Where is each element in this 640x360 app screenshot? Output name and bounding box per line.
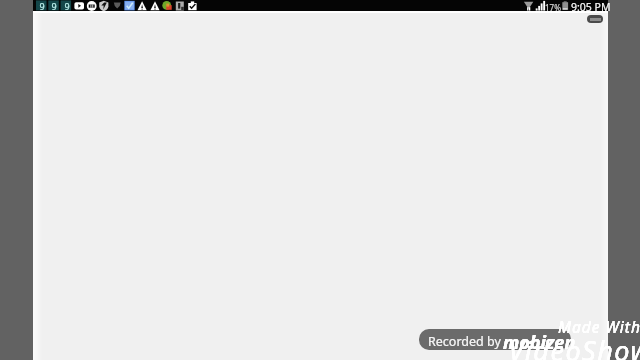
staticText: 9 xyxy=(64,0,70,10)
staticText: 9:05 PM xyxy=(571,0,611,13)
button[interactable]: Overlay badge xyxy=(587,15,603,23)
staticText: Recorded by xyxy=(428,333,501,350)
staticText: 9 xyxy=(39,0,45,10)
button[interactable]: Recorded by xyxy=(419,329,571,350)
staticText: 9 xyxy=(51,0,57,10)
staticText: 17% xyxy=(545,2,561,13)
